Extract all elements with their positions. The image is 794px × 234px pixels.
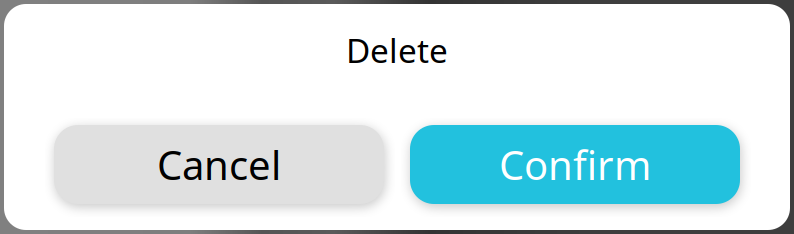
staticText: Delete: [346, 28, 448, 72]
button[interactable]: Cancel: [54, 125, 384, 204]
button[interactable]: Confirm: [410, 125, 740, 204]
staticText: Cancel: [157, 138, 281, 191]
staticText: Confirm: [499, 138, 651, 191]
